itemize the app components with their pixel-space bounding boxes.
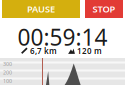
staticText: STOP <box>92 3 115 15</box>
staticText: 00:59:14 <box>17 22 107 52</box>
staticText: PAUSE <box>27 3 55 15</box>
staticText: 200 <box>3 69 12 76</box>
staticText: 6,7 km <box>30 46 57 56</box>
staticText: 300 <box>3 60 12 68</box>
button[interactable]: STOP <box>85 0 123 18</box>
button[interactable]: PAUSE <box>2 0 80 18</box>
staticText: 100 <box>3 77 12 85</box>
staticText: 120 m <box>77 46 102 56</box>
